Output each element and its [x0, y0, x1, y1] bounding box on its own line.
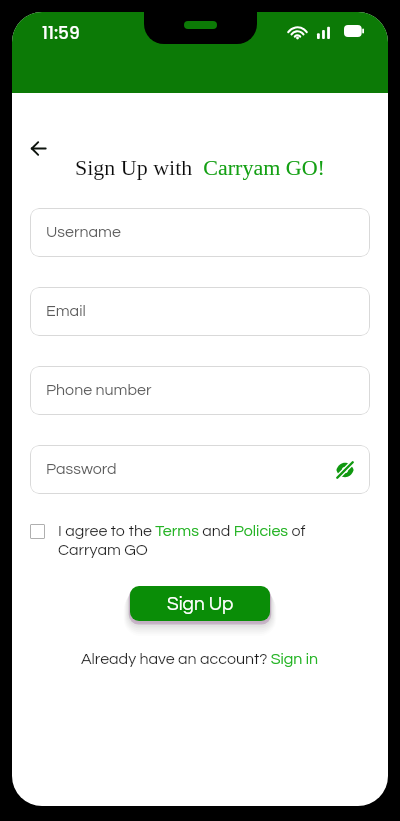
- staticText: Phone number: [46, 382, 152, 398]
- staticText: I agree to the Terms and Policies of Car…: [58, 523, 348, 558]
- button[interactable]: Phone number: [30, 366, 370, 415]
- staticText: Email: [46, 303, 86, 319]
- button[interactable]: Sign Up: [130, 586, 270, 621]
- staticText: Already have an account? Sign in: [81, 651, 319, 667]
- button[interactable]: Password: [30, 445, 370, 494]
- button[interactable]: Agree to terms and policies: [30, 524, 45, 539]
- button[interactable]: Username: [30, 208, 370, 257]
- staticText: Sign Up with Carryam GO!: [75, 155, 325, 179]
- staticText: Sign Up: [167, 594, 234, 614]
- staticText: 11:59: [42, 21, 80, 45]
- button[interactable]: Toggle password visibility: [333, 458, 357, 482]
- staticText: Password: [46, 461, 117, 477]
- button[interactable]: Email: [30, 287, 370, 336]
- button[interactable]: Back: [23, 133, 53, 163]
- button[interactable]: Already have an account? Sign in: [81, 651, 319, 667]
- staticText: Username: [46, 224, 121, 240]
